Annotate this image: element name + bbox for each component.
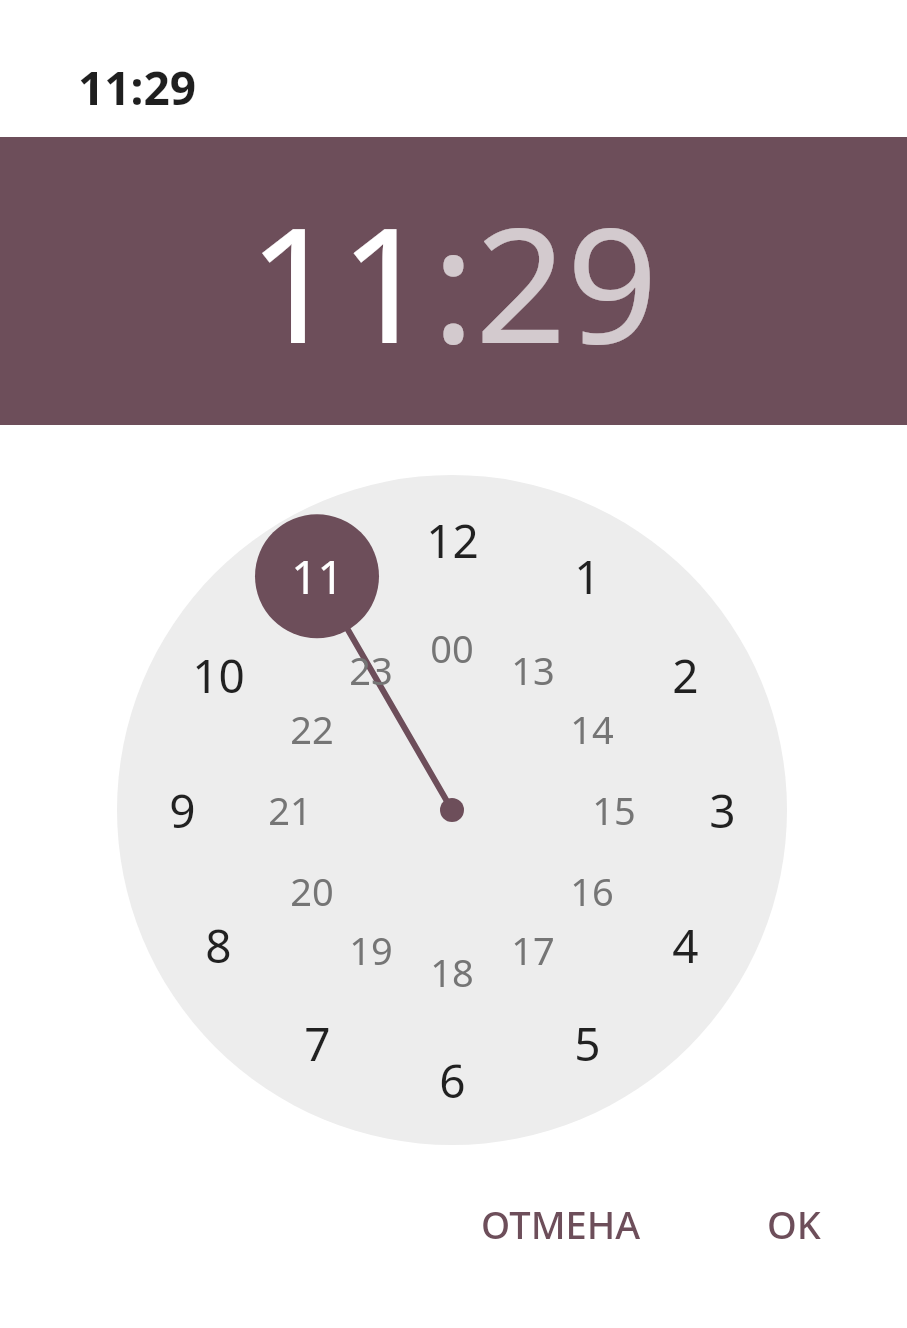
staticText: 00 <box>430 622 474 674</box>
staticText: 9 <box>169 779 196 842</box>
other: Clock dial showing 11:29 <box>117 475 787 1145</box>
staticText: 23 <box>349 644 393 696</box>
staticText: 12 <box>426 509 479 572</box>
staticText: 21 <box>268 784 312 836</box>
staticText: : <box>432 172 475 390</box>
staticText: 13 <box>511 644 555 696</box>
staticText: 15 <box>592 784 636 836</box>
staticText: 8 <box>205 914 232 977</box>
staticText: 3 <box>709 779 736 842</box>
staticText: 4 <box>672 914 699 977</box>
staticText: 17 <box>511 924 555 976</box>
staticText: 11 <box>291 545 344 608</box>
staticText: ОТМЕНА <box>481 1198 641 1250</box>
staticText: 7 <box>304 1012 331 1075</box>
staticText: 2 <box>672 644 699 707</box>
staticText: 16 <box>570 865 614 917</box>
button[interactable]: 29 <box>475 172 659 390</box>
staticText: 18 <box>430 946 474 998</box>
button[interactable] <box>117 475 787 1145</box>
staticText: 19 <box>349 924 393 976</box>
staticText: OK <box>767 1198 821 1250</box>
staticText: 5 <box>574 1012 601 1075</box>
staticText: 6 <box>439 1049 466 1112</box>
staticText: 10 <box>192 644 245 707</box>
staticText: 20 <box>290 865 334 917</box>
button[interactable]: 11 <box>248 172 432 390</box>
staticText: 1 <box>574 545 601 608</box>
staticText: 11:29 <box>78 56 197 119</box>
staticText: 22 <box>290 703 334 755</box>
button[interactable]: OK <box>743 1184 845 1264</box>
staticText: 14 <box>570 703 614 755</box>
button[interactable]: ОТМЕНА <box>457 1184 665 1264</box>
